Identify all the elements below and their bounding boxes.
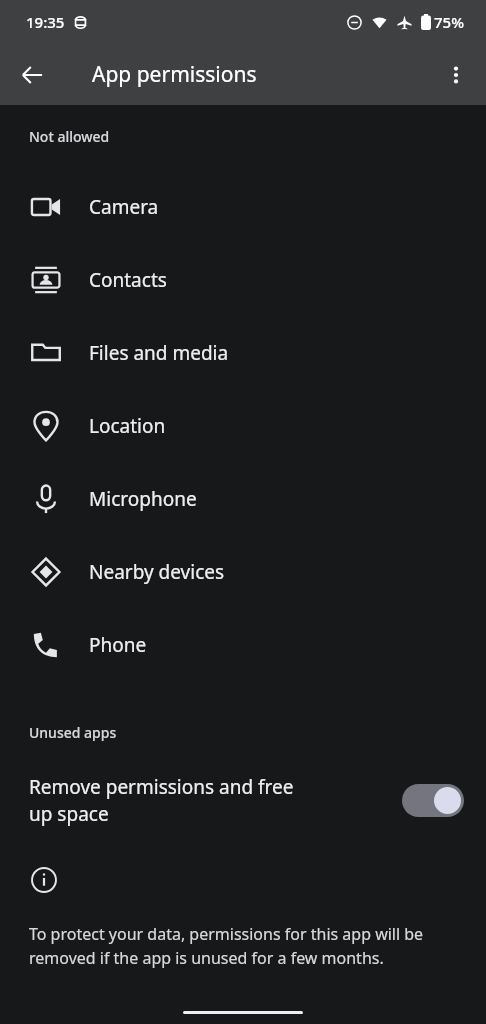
button[interactable]: Nearby devices: [0, 535, 486, 608]
staticText: Nearby devices: [89, 559, 225, 585]
staticText: To protect your data, permissions for th…: [29, 923, 424, 969]
button[interactable]: Microphone: [0, 462, 486, 535]
staticText: Contacts: [89, 267, 167, 293]
button[interactable]: Phone: [0, 608, 486, 681]
staticText: Location: [89, 413, 166, 439]
staticText: Not allowed: [29, 127, 110, 146]
button[interactable]: Location: [0, 389, 486, 462]
staticText: Unused apps: [29, 723, 117, 742]
button[interactable]: Remove permissions toggle: [402, 784, 464, 817]
button[interactable]: Back: [8, 51, 56, 99]
staticText: Remove permissions and free up space: [29, 774, 388, 827]
staticText: Files and media: [89, 340, 229, 366]
button[interactable]: Files and media: [0, 316, 486, 389]
button[interactable]: Remove permissions and free up space: [0, 766, 486, 835]
staticText: 75%: [434, 12, 464, 32]
staticText: Microphone: [89, 486, 197, 512]
staticText: Camera: [89, 194, 159, 220]
button[interactable]: More options: [433, 52, 479, 98]
staticText: App permissions: [92, 60, 257, 89]
button[interactable]: Contacts: [0, 243, 486, 316]
button[interactable]: Camera: [0, 170, 486, 243]
staticText: 19:35: [26, 12, 65, 32]
staticText: Phone: [89, 632, 147, 658]
